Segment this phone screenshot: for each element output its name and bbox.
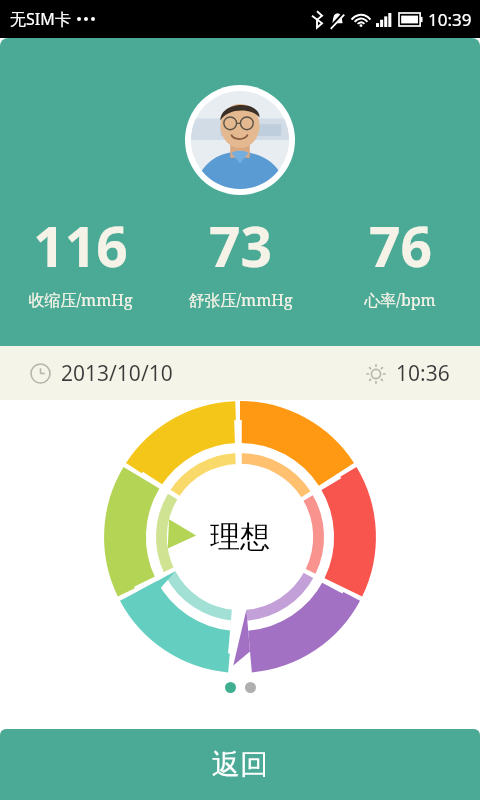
staticText: 理想 <box>210 518 270 556</box>
staticText: 2013/10/10 <box>61 359 173 388</box>
staticText: 10:39 <box>428 8 472 31</box>
staticText: 73 <box>209 208 272 283</box>
staticText: 返回 <box>212 747 268 782</box>
staticText: 无SIM卡 <box>10 8 71 30</box>
staticText: 心率/bpm <box>364 289 436 311</box>
staticText: 10:36 <box>396 359 450 388</box>
staticText: 76 <box>369 208 432 283</box>
staticText: 116 <box>33 208 128 283</box>
staticText: 收缩压/mmHg <box>28 289 133 311</box>
button[interactable]: 返回 <box>0 729 480 800</box>
staticText: 舒张压/mmHg <box>188 289 293 311</box>
